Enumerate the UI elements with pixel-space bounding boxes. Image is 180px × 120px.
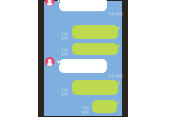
staticText: 9:41 bbox=[61, 47, 68, 52]
staticText: AM bbox=[61, 91, 68, 97]
staticText: 9:41 AM bbox=[108, 73, 123, 78]
staticText: AM bbox=[61, 35, 68, 41]
staticText: 9:41 bbox=[61, 31, 68, 36]
staticText: 9:41 bbox=[82, 105, 89, 110]
staticText: 9:41 AM bbox=[108, 11, 123, 16]
staticText: 9:41 bbox=[61, 87, 68, 92]
staticText: AM bbox=[82, 109, 89, 115]
staticText: AM bbox=[61, 51, 68, 57]
